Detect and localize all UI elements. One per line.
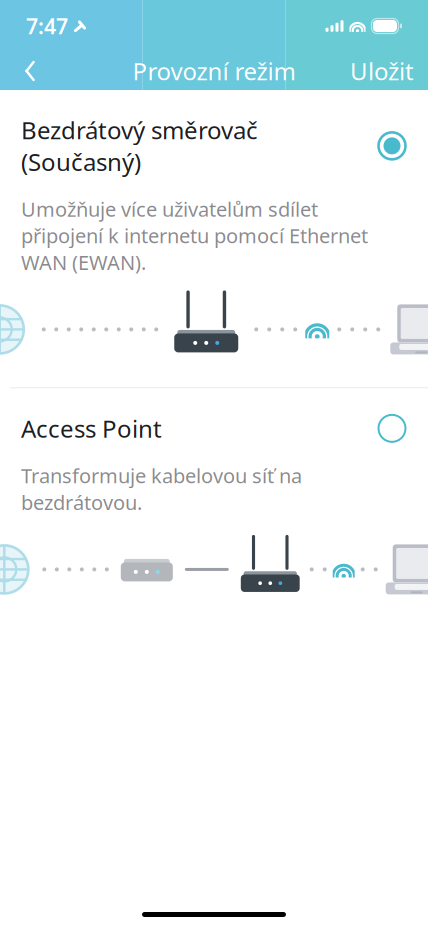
staticText: Umožňuje více uživatelům sdílet připojen… <box>21 196 368 275</box>
staticText: Access Point <box>21 412 162 444</box>
button[interactable]: Bezdrátový směrovač (Současný) <box>0 90 428 387</box>
button[interactable]: Access Point <box>0 388 428 627</box>
button[interactable]: Back <box>8 49 52 93</box>
staticText: Bezdrátový směrovač (Současný) <box>21 114 258 178</box>
staticText: Uložit <box>350 55 414 87</box>
button[interactable]: Uložit <box>344 49 420 93</box>
staticText: 7:47 <box>26 12 68 40</box>
staticText: Transformuje kabelovou síť na bezdrátovo… <box>21 462 302 515</box>
staticText: Provozní režim <box>132 55 295 87</box>
